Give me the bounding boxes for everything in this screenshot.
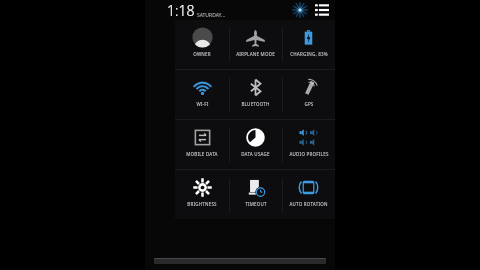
button[interactable]: DATA USAGE (229, 120, 282, 169)
button[interactable]: Close quick settings (145, 252, 335, 270)
staticText: GPS (304, 101, 314, 107)
staticText: 1:18 (167, 1, 195, 20)
button[interactable]: TIMEOUT (229, 170, 282, 219)
button[interactable]: AUTO ROTATION (282, 170, 335, 219)
button[interactable]: MOBILE DATA (175, 120, 229, 169)
staticText: BLUETOOTH (241, 101, 270, 107)
button[interactable]: AUDIO PROFILES (282, 120, 335, 169)
staticText: CHARGING, 83% (290, 51, 328, 57)
staticText: AUTO ROTATION (289, 201, 328, 207)
staticText: MOBILE DATA (186, 151, 218, 157)
button[interactable]: CHARGING, 83% (282, 20, 335, 69)
staticText: OWNER (193, 51, 211, 57)
staticText: BRIGHTNESS (187, 201, 217, 207)
button[interactable]: WI-FI (175, 70, 229, 119)
button[interactable]: BLUETOOTH (229, 70, 282, 119)
button[interactable]: Wallpaper preview (292, 2, 308, 18)
button[interactable]: BRIGHTNESS (175, 170, 229, 219)
staticText: AIRPLANE MODE (236, 51, 275, 57)
button[interactable]: GPS (282, 70, 335, 119)
staticText: WI-FI (196, 101, 209, 107)
button[interactable]: OWNER (175, 20, 229, 69)
button[interactable]: Settings list (313, 1, 331, 19)
staticText: DATA USAGE (241, 151, 270, 157)
button[interactable]: AIRPLANE MODE (229, 20, 282, 69)
staticText: AUDIO PROFILES (289, 151, 329, 157)
staticText: SATURDAY... (197, 12, 226, 19)
staticText: TIMEOUT (245, 201, 267, 207)
